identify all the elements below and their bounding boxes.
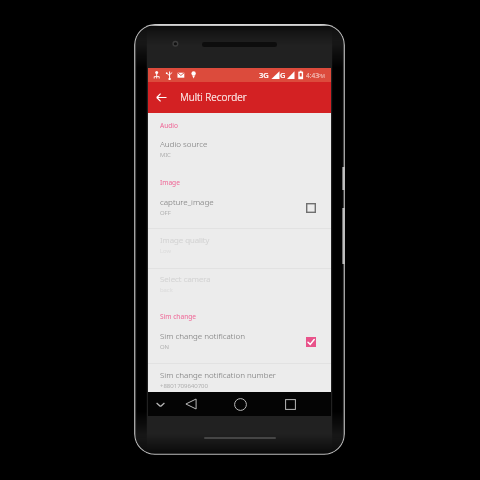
staticText: Image quality <box>160 234 210 245</box>
staticText: Image <box>160 178 180 187</box>
button[interactable]: Hide keyboard <box>151 392 169 416</box>
button[interactable]: Home <box>231 392 250 416</box>
button[interactable]: Recents <box>281 392 300 416</box>
staticText: Select camera <box>160 273 211 284</box>
staticText: back <box>160 286 173 294</box>
button[interactable]: Sim change notification <box>148 324 331 351</box>
staticText: 4:43 <box>306 71 319 80</box>
button[interactable]: Image quality <box>148 228 331 255</box>
staticText: Multi Recorder <box>180 90 247 104</box>
staticText: MIC <box>160 151 171 159</box>
staticText: 3G <box>259 70 269 80</box>
staticText: ON <box>160 343 169 351</box>
staticText: OFF <box>160 209 171 217</box>
button[interactable]: capture_image <box>148 190 331 217</box>
staticText: Sim change notification number <box>160 369 276 380</box>
staticText: Sim change <box>160 312 196 321</box>
button[interactable]: Navigate up <box>148 82 174 113</box>
staticText: Low <box>160 247 171 255</box>
staticText: PM <box>318 73 325 79</box>
button[interactable]: Sim change notification number <box>148 363 331 390</box>
staticText: G <box>280 70 286 80</box>
button[interactable]: Back <box>181 392 200 416</box>
staticText: capture_image <box>160 196 214 207</box>
button[interactable]: Select camera <box>148 267 331 294</box>
staticText: Audio source <box>160 138 208 149</box>
button[interactable]: Audio source <box>148 132 331 159</box>
staticText: Audio <box>160 121 179 130</box>
staticText: +8801709640700 <box>160 382 208 390</box>
staticText: Sim change notification <box>160 330 245 341</box>
